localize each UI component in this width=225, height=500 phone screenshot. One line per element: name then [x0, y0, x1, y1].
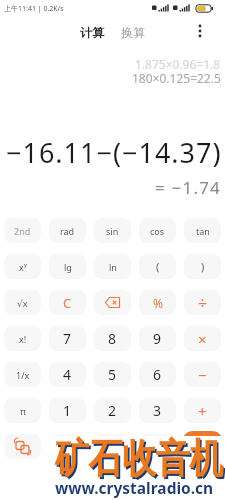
staticText: C — [63, 294, 72, 312]
staticText: 矿石收音机 — [55, 433, 223, 483]
staticText: 1 — [63, 401, 72, 420]
button[interactable]: + — [184, 398, 221, 423]
button[interactable]: tan — [184, 218, 221, 243]
button[interactable]: = — [182, 431, 223, 461]
button[interactable]: C — [49, 290, 86, 315]
staticText: 180×0.125=22.5 — [132, 70, 221, 86]
button[interactable]: rad — [49, 218, 86, 243]
button[interactable]: √x — [4, 290, 41, 315]
staticText: tan — [196, 225, 210, 237]
staticText: 换算 — [121, 25, 145, 40]
staticText: ) — [201, 259, 205, 274]
staticText: 6 — [153, 365, 162, 384]
staticText: www.crystalradio.cn — [55, 477, 214, 498]
button[interactable]: . — [139, 434, 176, 459]
button[interactable]: 3 — [139, 398, 176, 423]
staticText: 5 — [108, 365, 117, 384]
staticText: 2 — [108, 401, 117, 420]
staticText: 7 — [63, 329, 72, 348]
staticText: sin — [106, 225, 119, 237]
staticText: 4 — [63, 365, 72, 384]
button[interactable]: ÷ — [184, 290, 221, 315]
button[interactable]: 2nd — [4, 218, 41, 243]
staticText: e — [65, 441, 71, 453]
staticText: + — [198, 401, 207, 421]
button[interactable]: 9 — [139, 326, 176, 351]
button[interactable]: 7 — [49, 326, 86, 351]
button[interactable]: 换算 — [121, 25, 145, 40]
staticText: π — [20, 405, 26, 417]
staticText: cos — [150, 225, 165, 237]
staticText: % — [153, 295, 163, 311]
staticText: ( — [156, 259, 160, 274]
button[interactable]: 5 — [94, 362, 131, 387]
button[interactable]: × — [184, 326, 221, 351]
button[interactable]: 4 — [49, 362, 86, 387]
button[interactable] — [193, 24, 207, 38]
staticText: ÷ — [198, 292, 208, 314]
button[interactable]: 2 — [94, 398, 131, 423]
button[interactable]: ( — [139, 254, 176, 279]
button[interactable]: e — [49, 434, 86, 459]
staticText: 计算 — [80, 25, 104, 40]
button[interactable]: 8 — [94, 326, 131, 351]
staticText: 1/x — [16, 369, 30, 381]
button[interactable]: 0 — [94, 434, 131, 459]
staticText: rad — [60, 225, 75, 237]
button[interactable]: % — [139, 290, 176, 315]
staticText: 矿石收音机 — [57, 435, 225, 485]
button[interactable]: cos — [139, 218, 176, 243]
staticText: 3 — [153, 401, 162, 420]
staticText: 0 — [108, 437, 117, 456]
staticText: lg — [64, 261, 72, 273]
button[interactable]: sin — [94, 218, 131, 243]
staticText: × — [198, 329, 207, 349]
staticText: −16.11−(−14.37) — [6, 134, 222, 171]
button[interactable]: π — [4, 398, 41, 423]
staticText: 9 — [153, 329, 162, 348]
staticText: ln — [109, 261, 117, 273]
button[interactable]: ) — [184, 254, 221, 279]
button[interactable]: 1 — [49, 398, 86, 423]
staticText: 上午11:41 | 0.2K/s — [4, 4, 64, 14]
staticText: 8 — [108, 329, 117, 348]
button[interactable]: lg — [49, 254, 86, 279]
staticText: xy — [19, 261, 27, 273]
staticText: 2nd — [14, 225, 31, 237]
button[interactable]: x! — [4, 326, 41, 351]
staticText: 1.875×0.96=1.8 — [135, 56, 221, 72]
button[interactable]: xy — [4, 254, 41, 279]
staticText: x! — [19, 333, 27, 345]
staticText: = −1.74 — [155, 176, 221, 199]
button[interactable] — [94, 290, 131, 315]
button[interactable] — [4, 434, 41, 459]
button[interactable]: 1/x — [4, 362, 41, 387]
staticText: √x — [17, 297, 28, 309]
staticText: . — [156, 437, 160, 456]
button[interactable]: ln — [94, 254, 131, 279]
button[interactable]: 计算 — [80, 25, 104, 40]
staticText: − — [198, 365, 207, 385]
button[interactable]: − — [184, 362, 221, 387]
staticText: = — [198, 437, 207, 456]
button[interactable]: 6 — [139, 362, 176, 387]
